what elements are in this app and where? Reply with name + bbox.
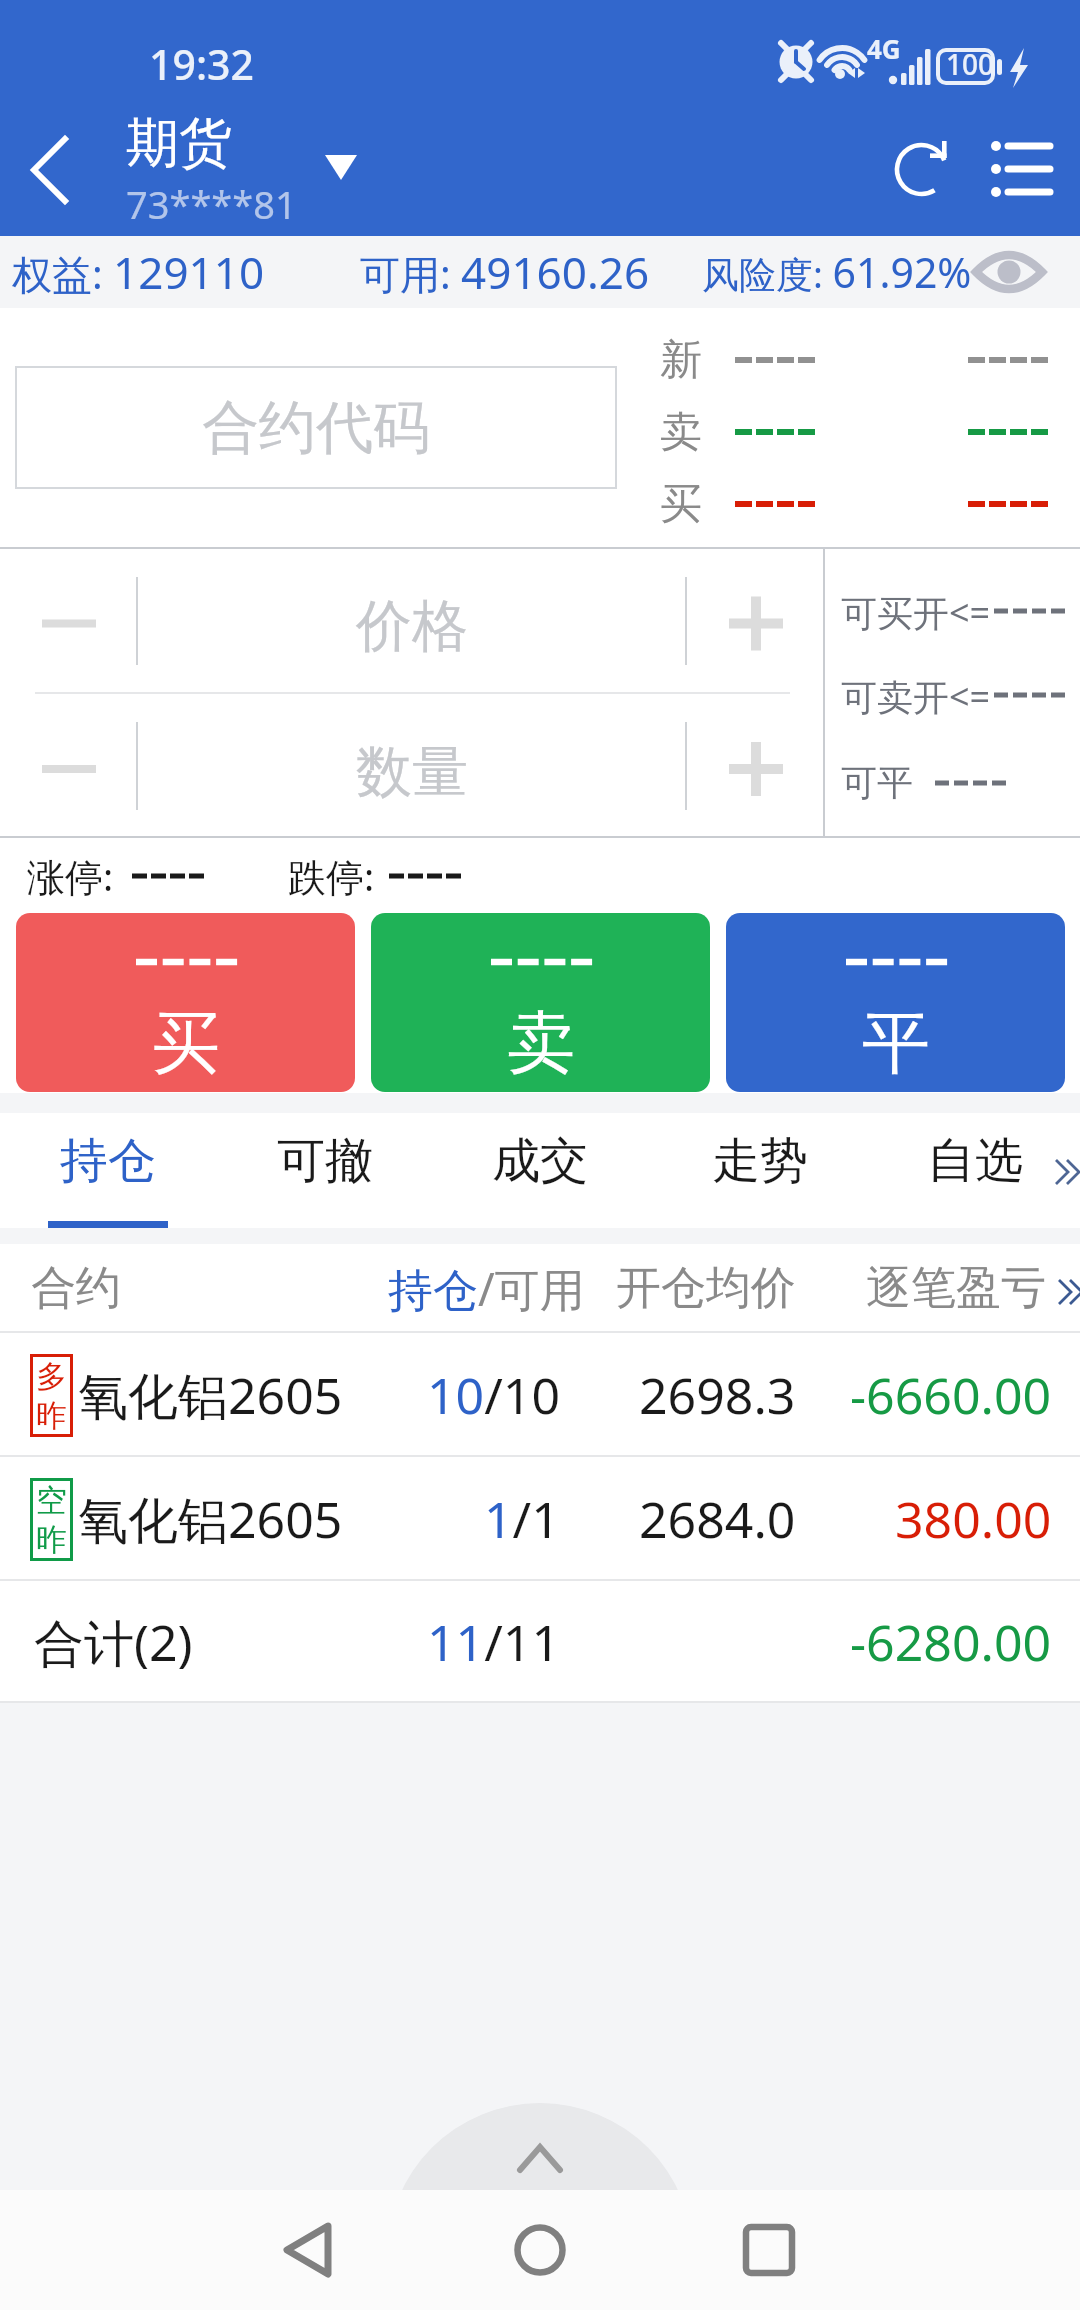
staticText: 权益: 129110 — [12, 242, 265, 302]
staticText: 可平 — [841, 760, 913, 805]
button[interactable]: Back — [8, 118, 90, 218]
button[interactable]: Recents — [719, 2190, 819, 2310]
button[interactable]: Increase 数量 — [687, 694, 823, 838]
button[interactable]: Decrease 数量 — [0, 694, 137, 838]
staticText: 卖 — [660, 406, 702, 459]
staticText: 2684.0 — [639, 1485, 796, 1553]
staticText: 自选 — [927, 1131, 1023, 1191]
staticText: 4G — [867, 31, 901, 66]
button[interactable]: Decrease 价格 — [0, 549, 137, 692]
button[interactable]: Switch account — [306, 135, 376, 197]
button[interactable]: 合约代码 — [15, 366, 617, 489]
staticText: -6660.00 — [850, 1361, 1052, 1429]
staticText: 合约代码 — [202, 392, 430, 464]
button[interactable]: 成交 — [470, 1113, 610, 1228]
staticText: 数量 — [356, 737, 468, 808]
staticText: 可买开<= — [841, 588, 991, 637]
staticText: 卖 — [507, 1001, 575, 1087]
staticText: 价格 — [356, 591, 468, 662]
staticText: 19:32 — [149, 36, 254, 92]
staticText: 买 — [152, 1001, 220, 1087]
staticText: 成交 — [492, 1131, 588, 1191]
staticText: 氧化铝2605 — [78, 1361, 343, 1429]
staticText: 可用: 49160.26 — [360, 242, 650, 302]
staticText: 多 — [36, 1357, 67, 1396]
staticText: 100 — [946, 45, 995, 83]
staticText: 可卖开<= — [841, 672, 991, 721]
staticText: 买 — [660, 478, 702, 531]
button[interactable]: 自选 — [905, 1113, 1045, 1228]
button[interactable]: Home — [490, 2190, 590, 2310]
staticText: 涨停: — [27, 850, 114, 902]
button[interactable]: 平 — [726, 913, 1065, 1092]
staticText: 持仓/可用 — [388, 1258, 585, 1319]
staticText: 期货 — [126, 110, 232, 177]
button[interactable]: 卖 — [371, 913, 710, 1092]
staticText: 新 — [660, 334, 702, 387]
staticText: 合计(2) — [34, 1608, 193, 1676]
staticText: 持仓 — [60, 1131, 156, 1191]
staticText: 逐笔盈亏 — [866, 1260, 1046, 1317]
staticText: 1/1 — [484, 1485, 560, 1553]
staticText: 空 — [36, 1481, 67, 1520]
staticText: 合约 — [31, 1260, 121, 1317]
button[interactable]: 多 — [0, 1333, 1080, 1457]
button[interactable]: 买 — [16, 913, 355, 1092]
staticText: 氧化铝2605 — [78, 1485, 343, 1553]
button[interactable]: Refresh — [880, 128, 966, 212]
staticText: 平 — [862, 1001, 930, 1087]
staticText: 走势 — [712, 1131, 808, 1191]
staticText: 380.00 — [895, 1485, 1052, 1553]
staticText: -6280.00 — [850, 1608, 1052, 1676]
button[interactable]: 可撤 — [255, 1113, 395, 1228]
staticText: 开仓均价 — [616, 1260, 796, 1317]
button[interactable]: 持仓 — [38, 1113, 178, 1228]
button[interactable]: 走势 — [690, 1113, 830, 1228]
staticText: 11/11 — [427, 1608, 560, 1676]
staticText: 73****81 — [126, 178, 297, 230]
button[interactable]: 空 — [0, 1457, 1080, 1581]
staticText: 可撤 — [277, 1131, 373, 1191]
staticText: 昨 — [36, 1520, 67, 1559]
staticText: 跌停: — [288, 850, 375, 902]
staticText: 10/10 — [427, 1361, 560, 1429]
button[interactable]: Menu — [984, 130, 1064, 210]
button[interactable]: Back — [258, 2190, 358, 2310]
button[interactable]: Increase 价格 — [687, 549, 823, 692]
staticText: 2698.3 — [639, 1361, 796, 1429]
staticText: 昨 — [36, 1396, 67, 1435]
staticText: 风险度: 61.92% — [702, 244, 972, 300]
button[interactable]: Toggle visibility — [969, 236, 1049, 308]
